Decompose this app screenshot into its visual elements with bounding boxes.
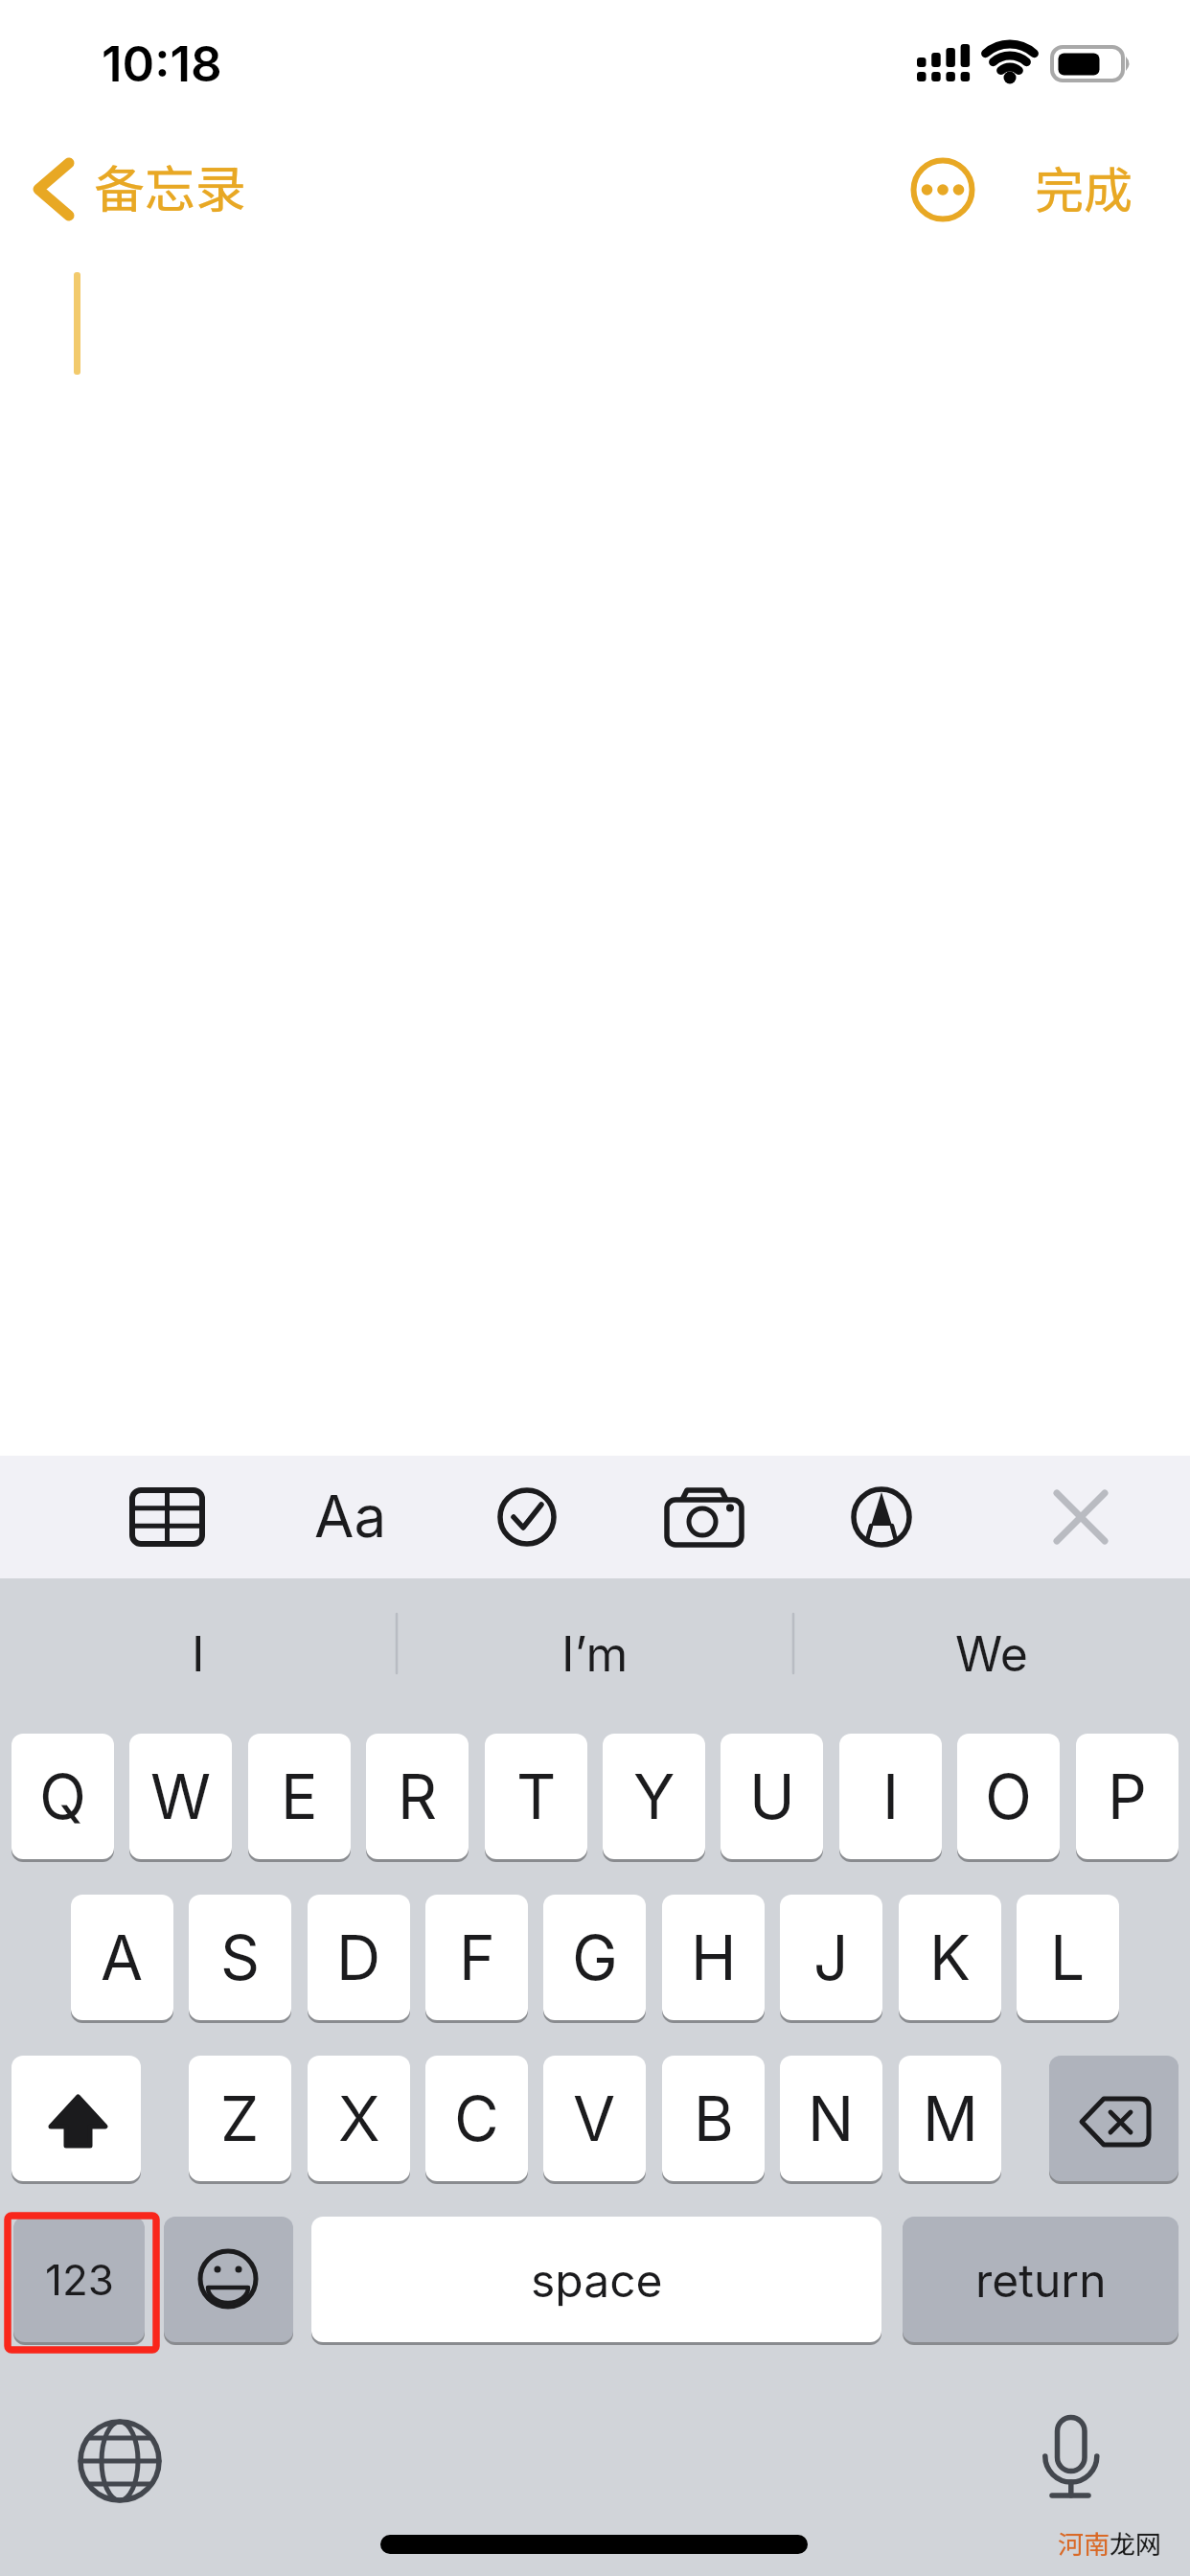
button[interactable]: Aa	[297, 1470, 404, 1562]
button[interactable]: J	[780, 1895, 882, 2020]
staticText: 备忘录	[94, 149, 246, 223]
button[interactable]: F	[425, 1895, 528, 2020]
button[interactable]: T	[485, 1734, 587, 1859]
button[interactable]: 完成	[1025, 151, 1140, 228]
staticText: B	[694, 2081, 734, 2155]
button[interactable]: D	[308, 1895, 410, 2020]
staticText: D	[336, 1920, 381, 1994]
button[interactable]	[663, 1476, 749, 1558]
staticText: A	[101, 1920, 144, 1994]
button[interactable]	[849, 1476, 916, 1558]
button[interactable]	[910, 157, 975, 222]
button[interactable]: M	[899, 2056, 1001, 2181]
button[interactable]: B	[662, 2056, 765, 2181]
button[interactable]: Q	[11, 1734, 114, 1859]
staticText: 完成	[1035, 151, 1133, 222]
button[interactable]: O	[957, 1734, 1060, 1859]
staticText: V	[573, 2081, 616, 2155]
staticText: P	[1108, 1759, 1147, 1833]
button[interactable]: A	[71, 1895, 173, 2020]
button[interactable]: return	[903, 2217, 1179, 2342]
button[interactable]: L	[1017, 1895, 1119, 2020]
button[interactable]: Y	[603, 1734, 705, 1859]
button[interactable]	[1048, 1476, 1115, 1558]
button[interactable]: R	[366, 1734, 469, 1859]
button[interactable]: N	[780, 2056, 882, 2181]
button[interactable]: 123	[13, 2217, 145, 2342]
button[interactable]: P	[1076, 1734, 1179, 1859]
staticText: N	[808, 2081, 855, 2155]
button[interactable]: I	[0, 1621, 397, 1688]
staticText: I’m	[561, 1625, 629, 1683]
button[interactable]: W	[129, 1734, 232, 1859]
staticText: Q	[39, 1759, 86, 1833]
staticText: F	[459, 1920, 495, 1994]
button[interactable]: V	[543, 2056, 646, 2181]
staticText: X	[338, 2081, 380, 2155]
button[interactable]	[11, 2056, 141, 2181]
staticText: I	[882, 1759, 900, 1833]
staticText: G	[572, 1920, 618, 1994]
button[interactable]: C	[425, 2056, 528, 2181]
button[interactable]: I	[839, 1734, 942, 1859]
staticText: C	[454, 2081, 499, 2155]
button[interactable]	[491, 1476, 567, 1558]
button[interactable]: X	[308, 2056, 410, 2181]
staticText: 10:18	[102, 34, 222, 94]
staticText: Y	[633, 1759, 675, 1833]
staticText: W	[150, 1759, 212, 1833]
staticText: E	[281, 1759, 318, 1833]
staticText: return	[975, 2252, 1107, 2308]
button[interactable]: K	[899, 1895, 1001, 2020]
staticText: T	[516, 1759, 557, 1833]
staticText: S	[220, 1920, 261, 1994]
button[interactable]: We	[793, 1621, 1190, 1688]
staticText: U	[749, 1759, 795, 1833]
button[interactable]	[73, 2413, 167, 2507]
staticText: H	[691, 1920, 737, 1994]
staticText: 河南	[1058, 2524, 1110, 2562]
staticText: space	[531, 2252, 663, 2308]
button[interactable]	[1023, 2403, 1119, 2499]
staticText: O	[985, 1759, 1032, 1833]
staticText: M	[923, 2081, 978, 2155]
staticText: J	[813, 1920, 849, 1994]
button[interactable]: H	[662, 1895, 765, 2020]
button[interactable]: Z	[189, 2056, 291, 2181]
button[interactable]	[1049, 2056, 1179, 2181]
staticText: 123	[45, 2254, 114, 2305]
button[interactable]: U	[721, 1734, 823, 1859]
button[interactable]: space	[311, 2217, 881, 2342]
button[interactable]: I’m	[397, 1621, 793, 1688]
button[interactable]: 备忘录	[29, 151, 240, 228]
staticText: I	[192, 1625, 205, 1683]
button[interactable]: E	[248, 1734, 351, 1859]
staticText: We	[955, 1625, 1028, 1683]
button[interactable]: G	[543, 1895, 646, 2020]
staticText: K	[929, 1920, 971, 1994]
staticText: R	[398, 1759, 438, 1833]
staticText: Z	[220, 2081, 260, 2155]
staticText: Aa	[314, 1482, 387, 1552]
staticText: 龙网	[1110, 2524, 1161, 2562]
button[interactable]: S	[189, 1895, 291, 2020]
button[interactable]	[123, 1476, 215, 1558]
staticText: L	[1050, 1920, 1086, 1994]
button[interactable]	[164, 2217, 293, 2342]
